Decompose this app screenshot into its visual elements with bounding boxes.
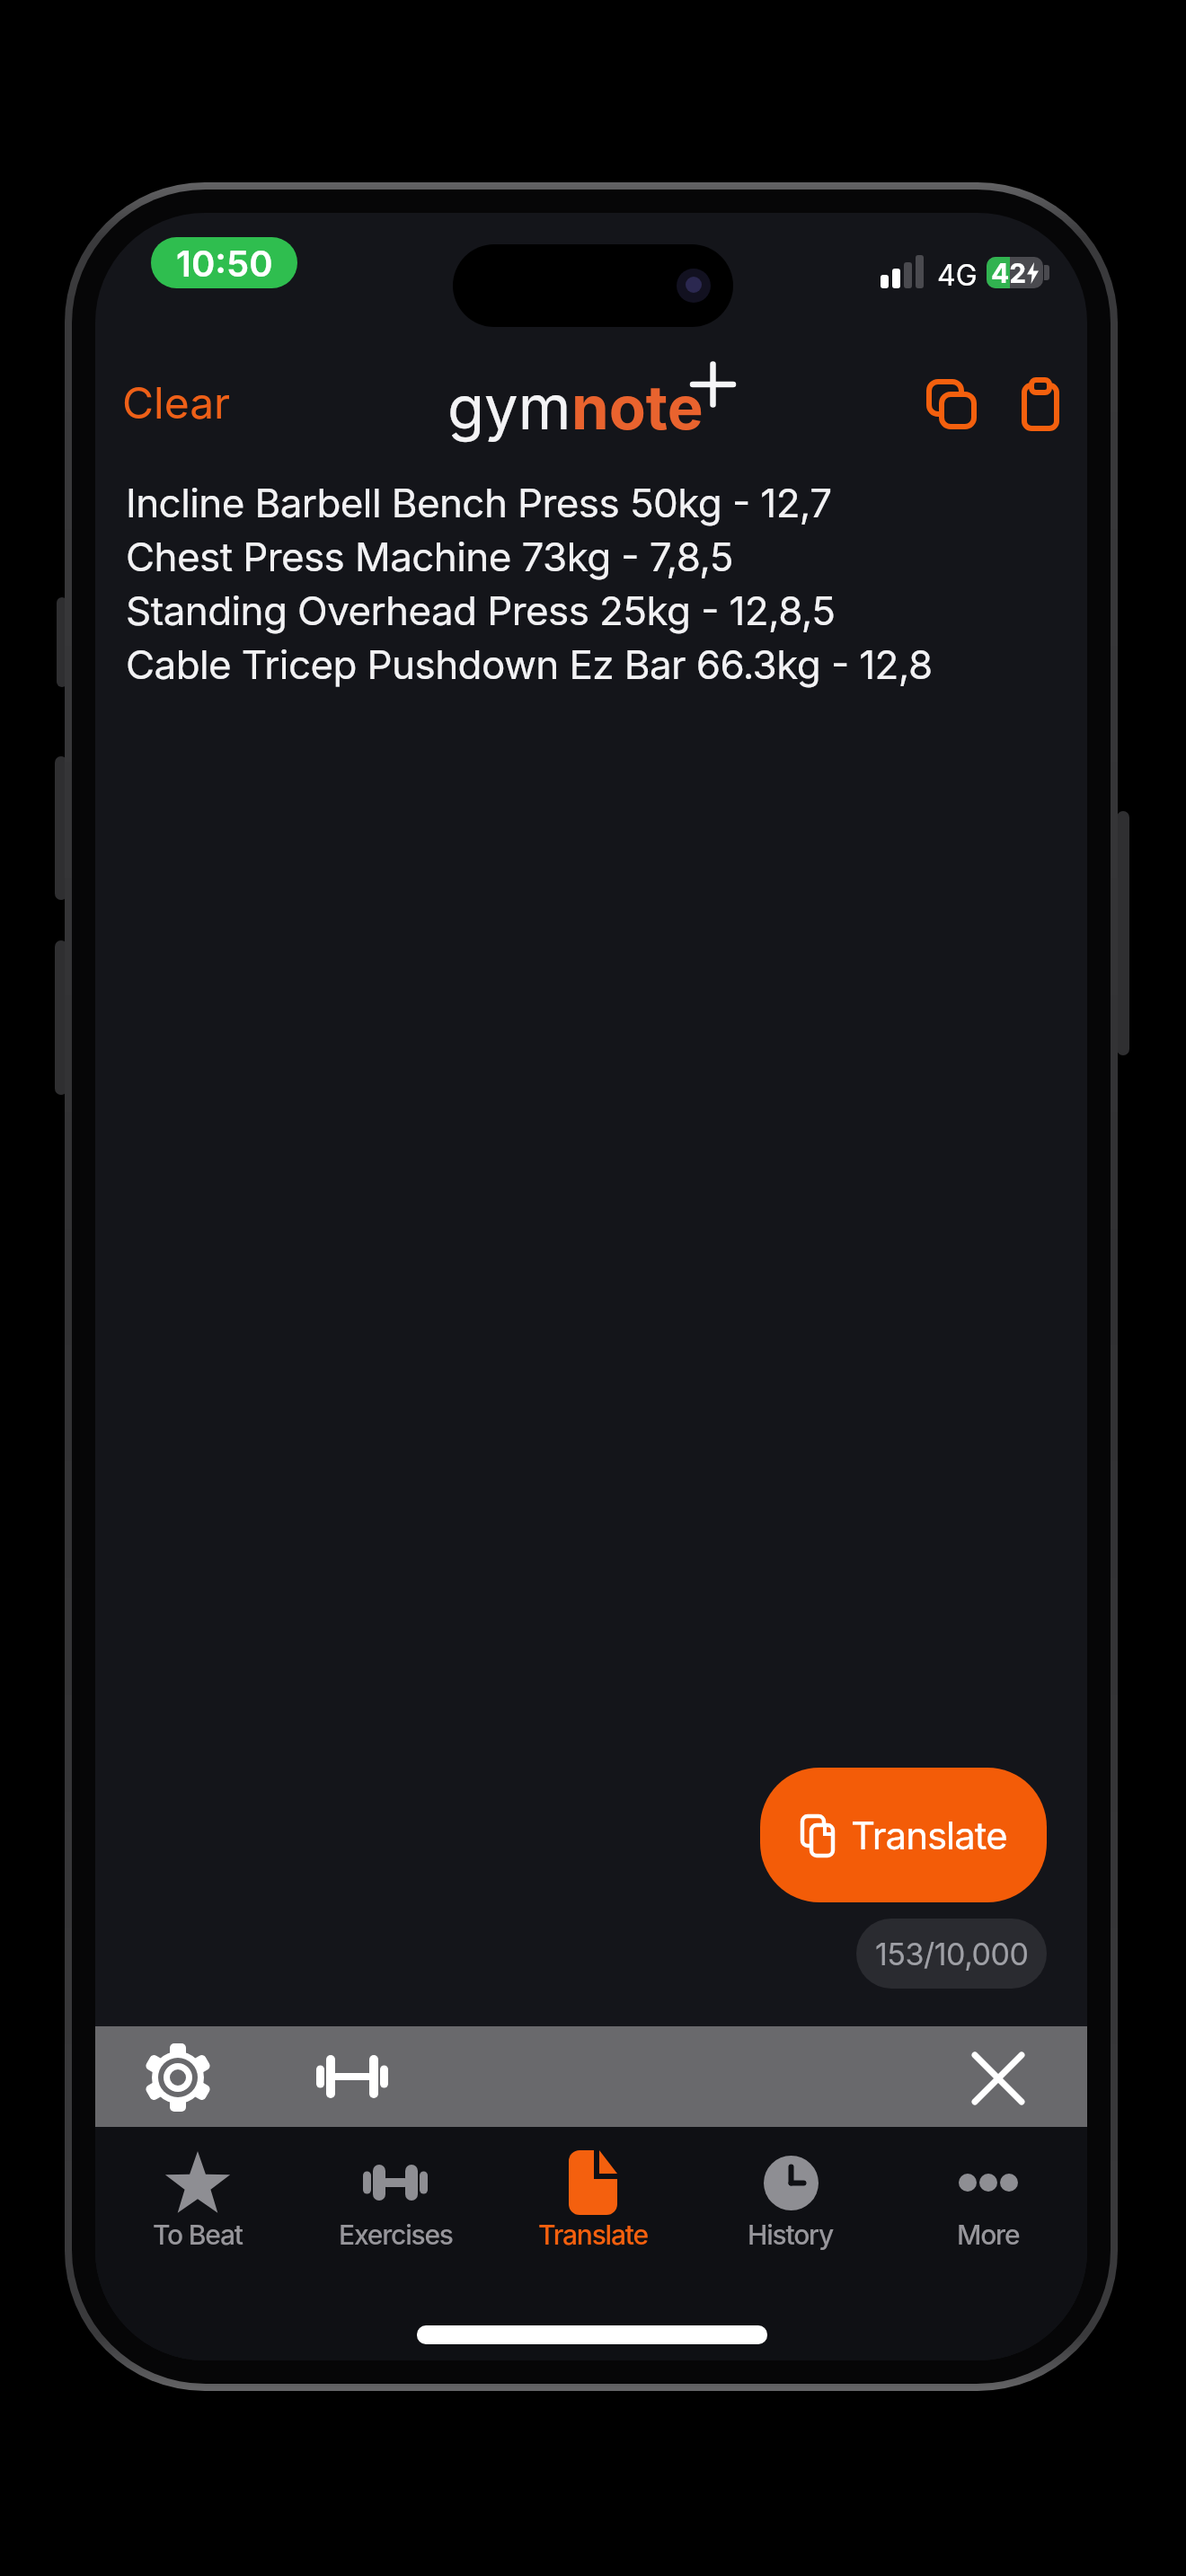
button[interactable] (307, 2039, 397, 2114)
button[interactable]: Translate (494, 2147, 692, 2317)
staticText: Translate (538, 2219, 648, 2251)
staticText: More (957, 2219, 1020, 2251)
staticText: note (571, 371, 704, 444)
staticText: 4G (937, 258, 978, 293)
button[interactable]: More (889, 2147, 1087, 2317)
button[interactable]: To Beat (99, 2147, 296, 2317)
staticText: Incline Barbell Bench Press 50kg - 12,7 … (126, 479, 933, 689)
staticText: To Beat (153, 2219, 243, 2251)
staticText: Translate (851, 1813, 1007, 1858)
button[interactable] (1003, 369, 1078, 441)
button[interactable] (135, 2034, 221, 2121)
button[interactable]: Exercises (296, 2147, 494, 2317)
staticText: 153/10,000 (875, 1936, 1029, 1972)
staticText: 10:50 (176, 242, 273, 285)
button[interactable]: Clear (122, 376, 231, 428)
staticText: gym (447, 371, 571, 444)
button[interactable] (914, 368, 989, 440)
button[interactable]: Translate (760, 1768, 1047, 1902)
staticText: 42 (991, 257, 1027, 288)
staticText: History (748, 2219, 834, 2251)
button[interactable]: History (692, 2147, 889, 2317)
button[interactable] (958, 2038, 1039, 2119)
staticText: Exercises (339, 2219, 453, 2251)
